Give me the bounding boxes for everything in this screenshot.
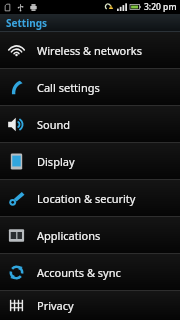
- staticText: 3:20 pm: [144, 1, 177, 13]
- staticText: Privacy: [37, 298, 74, 313]
- button[interactable]: Accounts & sync: [0, 254, 180, 290]
- staticText: Applications: [37, 228, 101, 243]
- staticText: Accounts & sync: [37, 265, 121, 280]
- staticText: Display: [37, 154, 75, 169]
- button[interactable]: Wireless & networks: [0, 32, 180, 68]
- button[interactable]: Call settings: [0, 69, 180, 105]
- button[interactable]: Location & security: [0, 180, 180, 216]
- staticText: Sound: [37, 117, 71, 132]
- button[interactable]: Display: [0, 143, 180, 179]
- button[interactable]: Applications: [0, 217, 180, 253]
- button[interactable]: Settings: [0, 14, 180, 32]
- button[interactable]: Sound: [0, 106, 180, 142]
- button[interactable]: Privacy: [0, 291, 180, 320]
- staticText: Location & security: [37, 191, 136, 206]
- staticText: Wireless & networks: [37, 43, 142, 58]
- staticText: Settings: [6, 16, 47, 30]
- staticText: Call settings: [37, 80, 100, 95]
